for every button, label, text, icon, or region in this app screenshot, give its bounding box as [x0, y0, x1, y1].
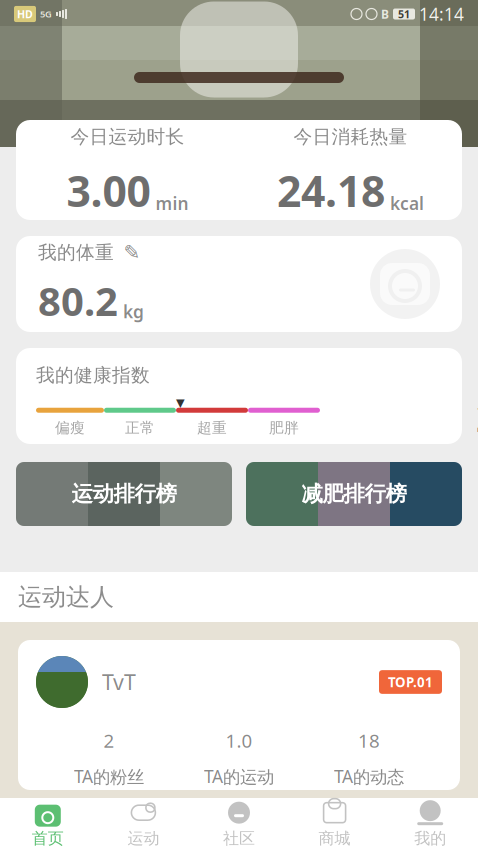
button[interactable]: 减肥排行榜	[246, 462, 462, 526]
staticText: 18	[358, 728, 380, 753]
staticText: TOP.01	[388, 673, 433, 691]
staticText: 首页	[32, 829, 64, 848]
staticText: 我的健康指数	[36, 364, 150, 387]
staticText: 80.2	[38, 274, 118, 327]
staticText: 运动达人	[18, 582, 114, 612]
staticText: kcal	[390, 192, 424, 215]
staticText: 1.0	[225, 728, 252, 753]
staticText: 25.31	[476, 393, 478, 442]
staticText: kg	[123, 300, 144, 323]
staticText: TvT	[102, 668, 136, 696]
staticText: ▾	[176, 392, 185, 412]
staticText: ✎	[123, 241, 140, 264]
staticText: 商城	[319, 829, 351, 848]
staticText: 2	[103, 728, 114, 753]
staticText: 3.00	[66, 162, 150, 219]
staticText: TA的运动	[204, 765, 274, 788]
staticText: 超重	[197, 419, 227, 437]
button[interactable]: 社区	[191, 798, 287, 850]
staticText: HD	[17, 7, 33, 21]
button[interactable]: 运动排行榜	[16, 462, 232, 526]
button[interactable]: TvT	[0, 640, 478, 790]
staticText: TA的动态	[334, 765, 404, 788]
staticText: 5G	[40, 8, 52, 20]
button[interactable]: 我的	[382, 798, 478, 850]
staticText: 减肥排行榜	[301, 481, 406, 507]
staticText: 今日运动时长	[70, 125, 184, 148]
button[interactable]: 首页	[0, 798, 96, 850]
button[interactable]: 编辑体重	[122, 242, 142, 262]
button[interactable]: 商城	[287, 798, 382, 850]
staticText: 今日消耗热量	[293, 125, 407, 148]
staticText: TA的粉丝	[74, 765, 144, 788]
staticText: 运动	[127, 829, 159, 848]
staticText: 我的	[414, 829, 446, 848]
staticText: B	[381, 6, 389, 22]
button[interactable]: 运动	[96, 798, 191, 850]
staticText: 社区	[223, 829, 255, 848]
staticText: 14:14	[419, 2, 464, 25]
staticText: 正常	[125, 419, 155, 437]
staticText: 51	[398, 7, 410, 21]
staticText: 我的体重	[38, 241, 114, 264]
staticText: 偏瘦	[55, 419, 85, 437]
staticText: 运动排行榜	[71, 481, 176, 507]
staticText: 24.18	[277, 162, 385, 219]
staticText: min	[155, 192, 188, 215]
staticText: 肥胖	[269, 419, 299, 437]
